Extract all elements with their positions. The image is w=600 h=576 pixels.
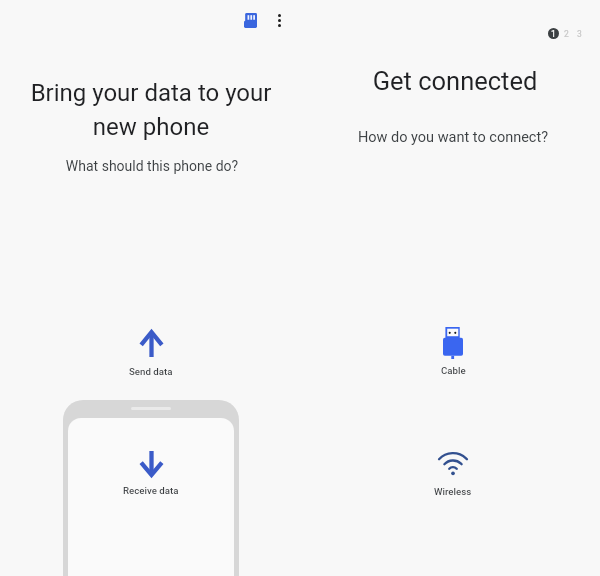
- button[interactable]: Wireless: [411, 451, 495, 497]
- button[interactable]: Receive data: [109, 451, 193, 496]
- staticText: 3: [577, 29, 582, 39]
- staticText: Wireless: [434, 486, 472, 497]
- button[interactable]: Cable: [411, 327, 495, 376]
- staticText: Get connected: [305, 66, 600, 96]
- staticText: 1: [551, 29, 556, 39]
- button[interactable]: Step 3: [574, 28, 585, 39]
- button[interactable]: Use SD card: [238, 8, 262, 32]
- staticText: Receive data: [123, 485, 179, 496]
- staticText: 2: [564, 29, 569, 39]
- staticText: Send data: [129, 366, 173, 377]
- button[interactable]: More options: [267, 8, 291, 32]
- button[interactable]: Step 1: [548, 28, 559, 39]
- staticText: Bring your data to your new phone: [20, 79, 282, 140]
- staticText: How do you want to connect?: [303, 129, 600, 146]
- staticText: What should this phone do?: [21, 158, 283, 174]
- staticText: Cable: [441, 365, 466, 376]
- button[interactable]: Send data: [109, 330, 193, 377]
- button[interactable]: Step 2: [561, 28, 572, 39]
